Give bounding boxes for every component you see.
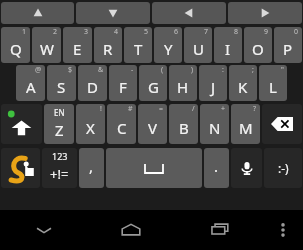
button[interactable]: = [138,104,167,144]
staticText: . [214,156,219,176]
button[interactable]: Backspace [262,104,302,144]
staticText: @ [35,65,42,75]
button[interactable]: # [107,104,136,144]
button[interactable]: ! [76,104,105,144]
staticText: EN [54,107,65,118]
staticText: P [283,39,293,59]
staticText: ( [161,65,164,75]
button[interactable]: :-) [264,148,302,188]
button[interactable]: - [109,65,137,101]
staticText: 123 [52,150,68,162]
staticText: Z [55,120,64,140]
staticText: C [117,118,127,138]
button[interactable]: . [204,148,229,188]
staticText: Y [164,39,173,59]
staticText: N [209,118,221,138]
staticText: H [177,77,189,97]
staticText: 1 [22,27,27,37]
button[interactable]: & [78,65,107,101]
button[interactable]: 4 [94,27,122,63]
staticText: ! [100,104,102,114]
staticText: W [40,39,54,59]
staticText: M [239,118,253,138]
staticText: : [222,65,224,75]
button[interactable]: 9 [244,27,272,63]
staticText: Q [10,39,22,59]
staticText: L [269,77,277,97]
staticText: J [211,77,216,97]
button[interactable]: + [200,104,229,144]
button[interactable]: Right [228,2,302,24]
button[interactable]: 5 [124,27,152,63]
staticText: " [281,65,284,75]
staticText: +!= [50,165,69,183]
staticText: 6 [174,27,179,37]
staticText: 8 [234,27,239,37]
button[interactable]: Gesture typing [1,148,40,188]
button[interactable]: Menu [263,210,303,250]
button[interactable]: Left [152,2,226,24]
staticText: E [73,39,82,59]
staticText: 7 [204,27,209,37]
staticText: S [57,77,66,97]
staticText: $ [68,65,73,75]
staticText: D [87,77,98,97]
staticText: + [221,104,226,114]
staticText: K [238,77,248,97]
staticText: V [148,118,158,138]
staticText: - [131,65,134,75]
button[interactable]: 2 [32,27,61,63]
button[interactable]: Space [106,148,202,188]
button[interactable]: 1 [1,27,30,63]
staticText: ) [191,65,194,75]
staticText: = [159,104,164,114]
staticText: 3 [84,27,89,37]
button[interactable]: Home [87,210,175,250]
staticText: 2 [53,27,58,37]
staticText: A [26,77,36,97]
button[interactable]: ( [139,65,167,101]
staticText: :-) [278,160,289,176]
staticText: U [193,39,204,59]
staticText: 4 [114,27,119,37]
staticText: R [103,39,113,59]
button[interactable]: / [169,104,198,144]
button[interactable]: ) [169,65,197,101]
button[interactable]: Down [76,2,150,24]
button[interactable]: 8 [214,27,242,63]
button[interactable]: , [79,148,104,188]
staticText: B [179,118,189,138]
button[interactable]: 7 [184,27,212,63]
staticText: ? [253,104,257,114]
button[interactable]: Back [0,210,87,250]
staticText: F [119,77,127,97]
staticText: , [89,156,94,176]
staticText: 9 [264,27,269,37]
staticText: ; [252,65,254,75]
staticText: / [192,104,195,114]
button[interactable]: EN [44,104,74,144]
button[interactable]: 123 [42,148,77,188]
button[interactable]: ; [229,65,257,101]
staticText: X [86,118,95,138]
button[interactable]: ? [231,104,260,144]
button[interactable]: 0 [274,27,302,63]
button[interactable]: @ [16,65,45,101]
staticText: G [148,77,159,97]
button[interactable]: 3 [63,27,92,63]
staticText: O [252,39,264,59]
button[interactable]: Shift [1,104,42,144]
button[interactable]: : [199,65,227,101]
staticText: T [134,39,143,59]
button[interactable]: Voice input [231,148,262,188]
staticText: 5 [144,27,149,37]
staticText: # [128,104,133,114]
button[interactable]: $ [47,65,76,101]
button[interactable]: " [259,65,287,101]
staticText: I [225,39,231,59]
staticText: 0 [294,27,299,37]
button[interactable]: Recent apps [175,210,263,250]
button[interactable]: Up [1,2,74,24]
staticText: & [98,65,104,75]
button[interactable]: 6 [154,27,182,63]
